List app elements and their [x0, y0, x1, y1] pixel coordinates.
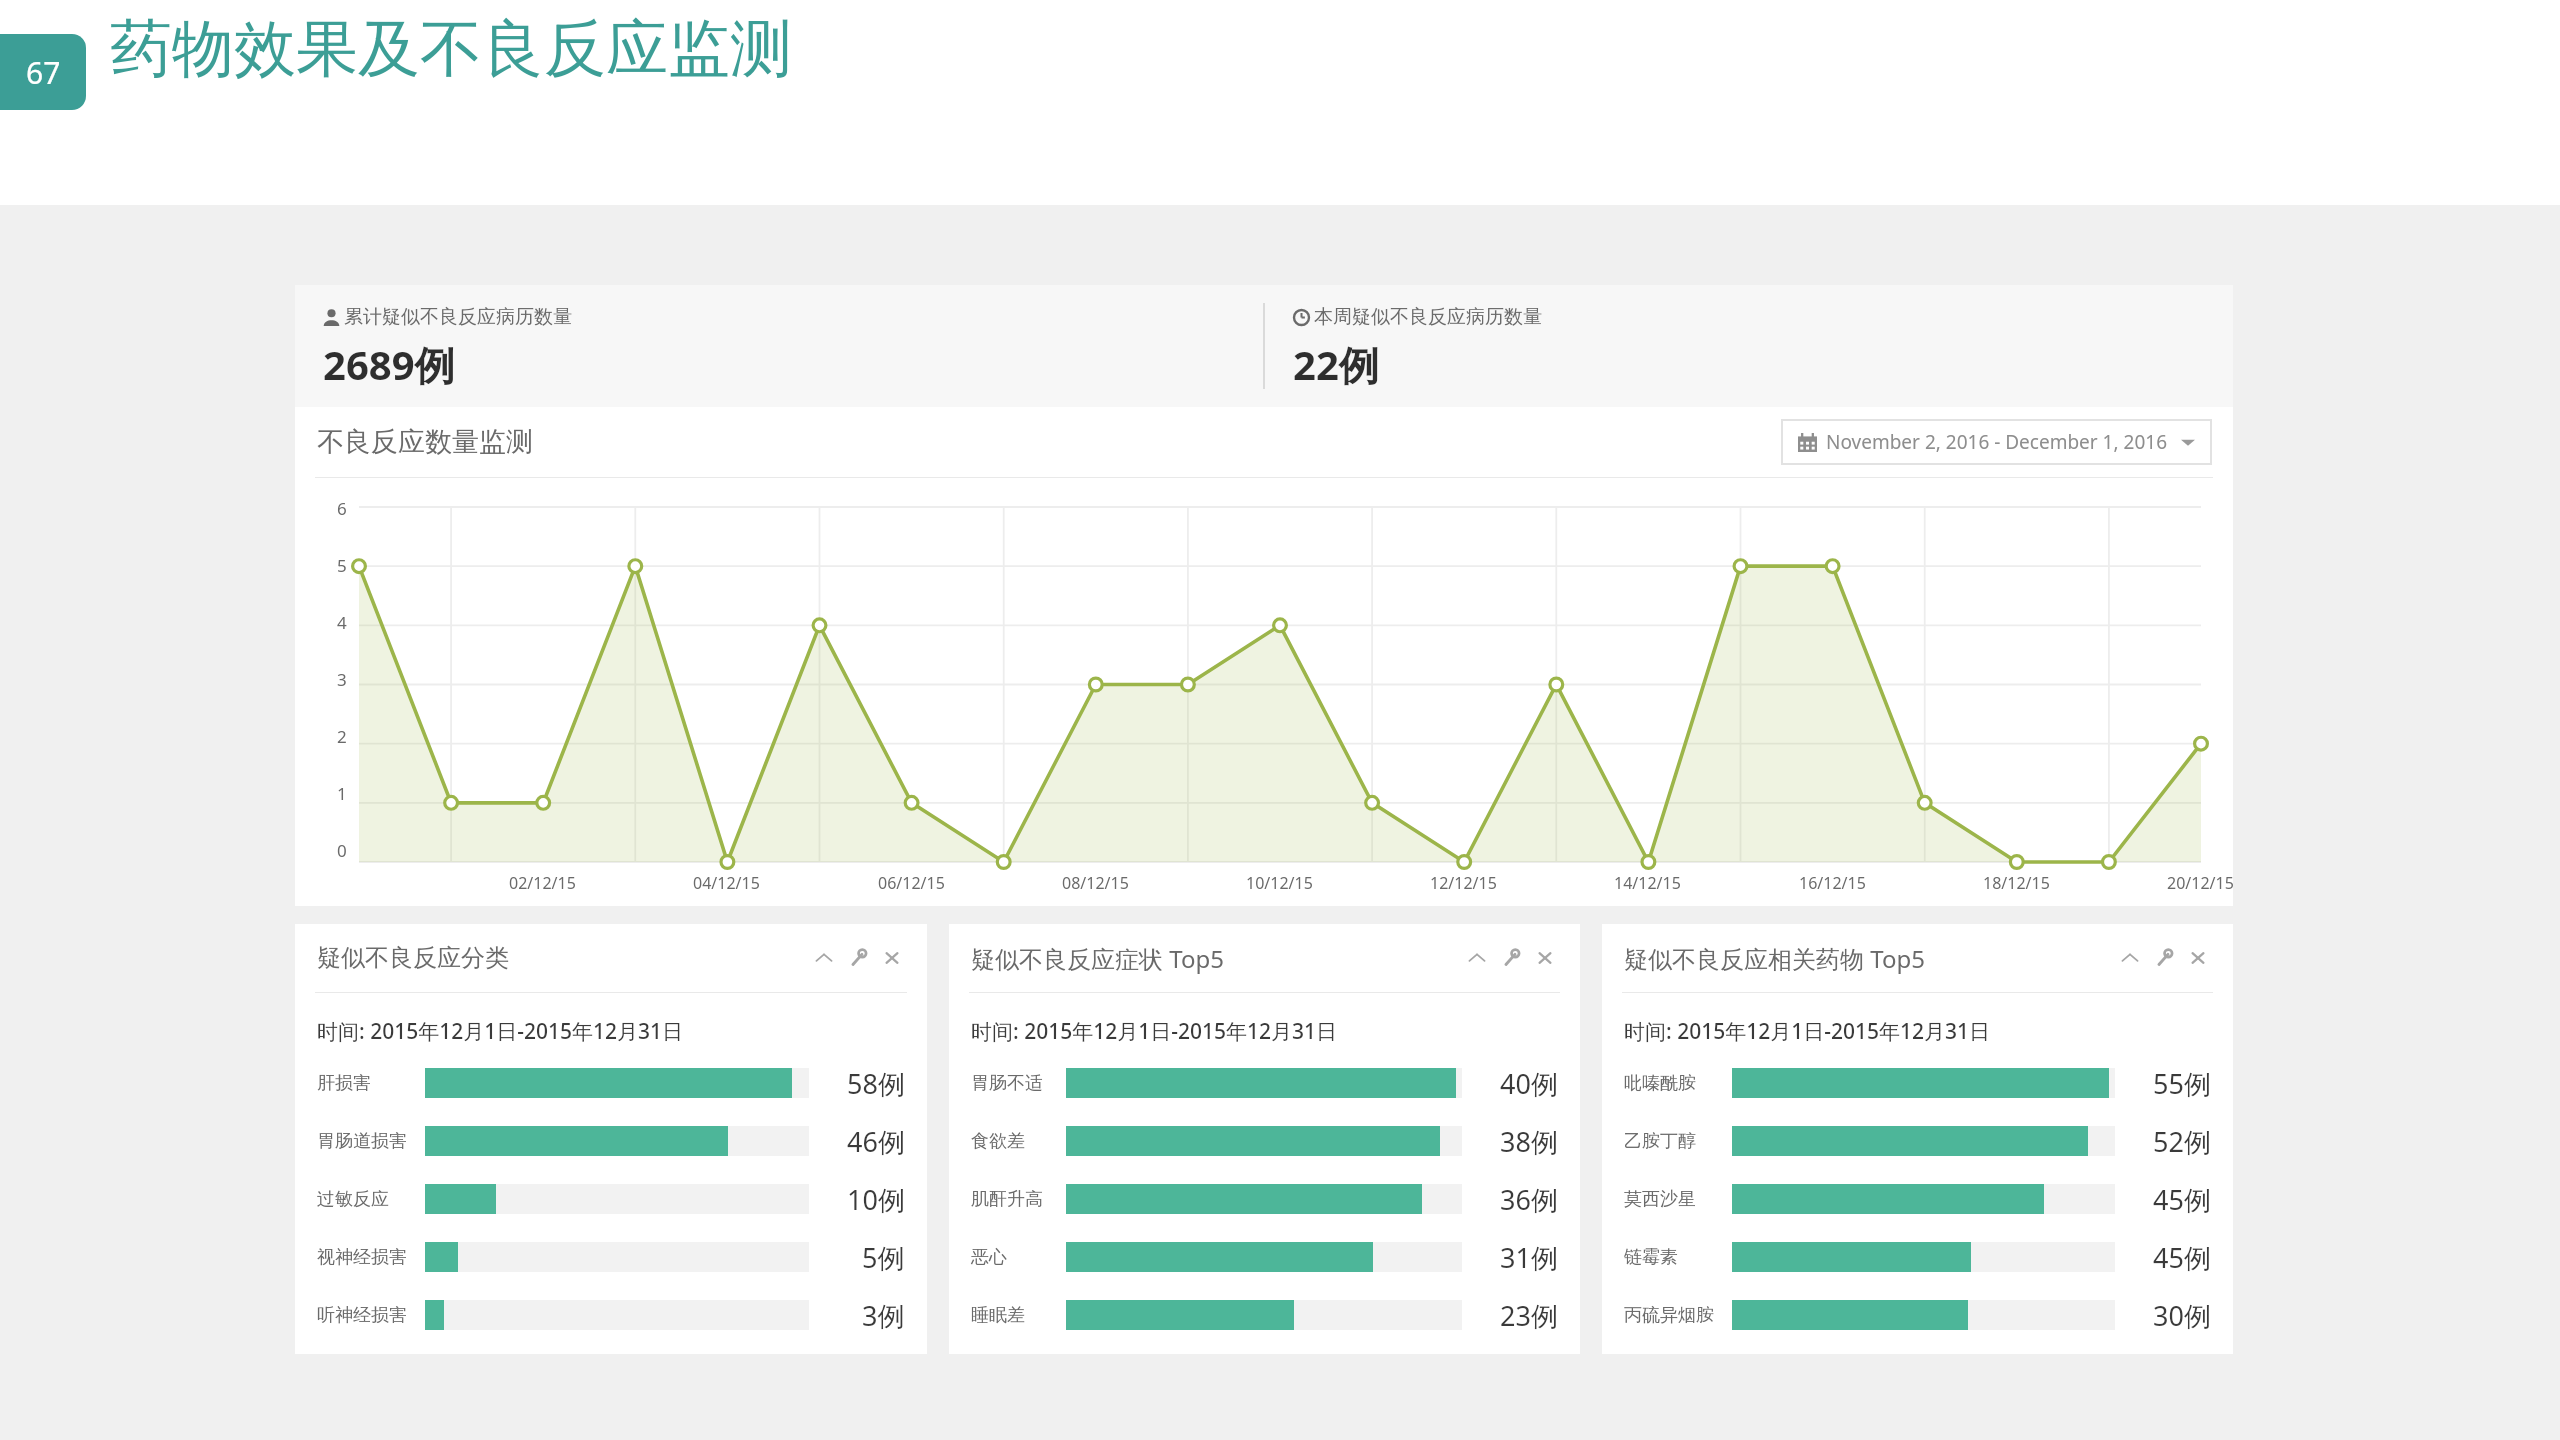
button[interactable]: 67	[0, 34, 86, 110]
staticText: 10/12/15	[1246, 872, 1313, 894]
staticText: 5例	[862, 1239, 905, 1276]
button[interactable]: 肌酐升高	[971, 1170, 1558, 1228]
button[interactable]: 丙硫异烟胺	[1624, 1286, 2211, 1344]
button[interactable]: 视神经损害	[317, 1228, 905, 1286]
staticText: 3	[337, 668, 347, 691]
staticText: 胃肠道损害	[317, 1130, 425, 1153]
staticText: 1	[337, 782, 347, 805]
staticText: 胃肠不适	[971, 1072, 1066, 1095]
button[interactable]: 吡嗪酰胺	[1624, 1054, 2211, 1112]
staticText: 食欲差	[971, 1130, 1066, 1153]
staticText: 20/12/15	[2167, 872, 2234, 894]
button[interactable]: 听神经损害	[317, 1286, 905, 1344]
button[interactable]: 疑似不良反应相关药物 Top5	[1602, 924, 2233, 1354]
staticText: 疑似不良反应分类	[317, 943, 811, 973]
staticText: 52例	[2153, 1123, 2211, 1160]
staticText: 40例	[1500, 1065, 1558, 1102]
staticText: 36例	[1500, 1181, 1558, 1218]
button[interactable]: Close	[879, 945, 905, 971]
staticText: 08/12/15	[1062, 872, 1129, 894]
button[interactable]: 本周疑似不良反应病历数量	[1265, 285, 2233, 407]
staticText: 23例	[1500, 1297, 1558, 1334]
staticText: 3例	[862, 1297, 905, 1334]
button[interactable]: Settings	[1498, 945, 1524, 971]
staticText: 14/12/15	[1614, 872, 1681, 894]
staticText: 46例	[847, 1123, 905, 1160]
staticText: 不良反应数量监测	[317, 425, 1782, 459]
staticText: 疑似不良反应相关药物 Top5	[1624, 942, 2117, 975]
staticText: 2689例	[323, 337, 455, 392]
button[interactable]: Collapse	[811, 945, 837, 971]
button[interactable]: 胃肠不适	[971, 1054, 1558, 1112]
button[interactable]: Close	[1532, 945, 1558, 971]
staticText: 恶心	[971, 1246, 1066, 1269]
staticText: 31例	[1500, 1239, 1558, 1276]
staticText: 02/12/15	[509, 872, 576, 894]
button[interactable]: 累计疑似不良反应病历数量	[295, 285, 1263, 407]
button[interactable]: 睡眠差	[971, 1286, 1558, 1344]
staticText: 67	[26, 52, 61, 93]
staticText: 58例	[847, 1065, 905, 1102]
staticText: 链霉素	[1624, 1246, 1732, 1269]
staticText: 10例	[847, 1181, 905, 1218]
staticText: 吡嗪酰胺	[1624, 1072, 1732, 1095]
button[interactable]: November 2, 2016 - December 1, 2016	[1798, 429, 2195, 455]
button[interactable]: Collapse	[2117, 945, 2143, 971]
button[interactable]: 恶心	[971, 1228, 1558, 1286]
staticText: 时间: 2015年12月1日-2015年12月31日	[1624, 1017, 1991, 1046]
staticText: 55例	[2153, 1065, 2211, 1102]
staticText: 听神经损害	[317, 1304, 425, 1327]
staticText: 06/12/15	[878, 872, 945, 894]
button[interactable]: Settings	[2151, 945, 2177, 971]
button[interactable]: 食欲差	[971, 1112, 1558, 1170]
staticText: 视神经损害	[317, 1246, 425, 1269]
staticText: 肝损害	[317, 1072, 425, 1095]
staticText: 45例	[2153, 1239, 2211, 1276]
staticText: 疑似不良反应症状 Top5	[971, 942, 1464, 975]
staticText: 时间: 2015年12月1日-2015年12月31日	[317, 1017, 684, 1046]
staticText: 18/12/15	[1983, 872, 2050, 894]
button[interactable]: 肝损害	[317, 1054, 905, 1112]
staticText: 30例	[2153, 1297, 2211, 1334]
staticText: 药物效果及不良反应监测	[110, 10, 792, 88]
staticText: 04/12/15	[693, 872, 760, 894]
staticText: 丙硫异烟胺	[1624, 1304, 1732, 1327]
staticText: November 2, 2016 - December 1, 2016	[1826, 429, 2167, 455]
staticText: 0	[337, 839, 347, 862]
staticText: 5	[337, 554, 347, 577]
staticText: 4	[337, 611, 347, 634]
button[interactable]: Collapse	[1464, 945, 1490, 971]
button[interactable]: 过敏反应	[317, 1170, 905, 1228]
button[interactable]: Close	[2185, 945, 2211, 971]
staticText: 睡眠差	[971, 1304, 1066, 1327]
button[interactable]: 链霉素	[1624, 1228, 2211, 1286]
staticText: 过敏反应	[317, 1188, 425, 1211]
staticText: 45例	[2153, 1181, 2211, 1218]
button[interactable]: 疑似不良反应症状 Top5	[949, 924, 1580, 1354]
staticText: 6	[337, 497, 347, 520]
staticText: 乙胺丁醇	[1624, 1130, 1732, 1153]
staticText: 累计疑似不良反应病历数量	[344, 305, 572, 329]
staticText: 38例	[1500, 1123, 1558, 1160]
staticText: 肌酐升高	[971, 1188, 1066, 1211]
staticText: 16/12/15	[1799, 872, 1866, 894]
staticText: 本周疑似不良反应病历数量	[1314, 305, 1542, 329]
staticText: 12/12/15	[1430, 872, 1497, 894]
button[interactable]: 疑似不良反应分类	[295, 924, 927, 1354]
staticText: 2	[337, 725, 347, 748]
button[interactable]: 胃肠道损害	[317, 1112, 905, 1170]
button[interactable]: 乙胺丁醇	[1624, 1112, 2211, 1170]
staticText: 22例	[1293, 337, 1379, 392]
button[interactable]: Settings	[845, 945, 871, 971]
button[interactable]: 莫西沙星	[1624, 1170, 2211, 1228]
staticText: 莫西沙星	[1624, 1188, 1732, 1211]
staticText: 时间: 2015年12月1日-2015年12月31日	[971, 1017, 1338, 1046]
